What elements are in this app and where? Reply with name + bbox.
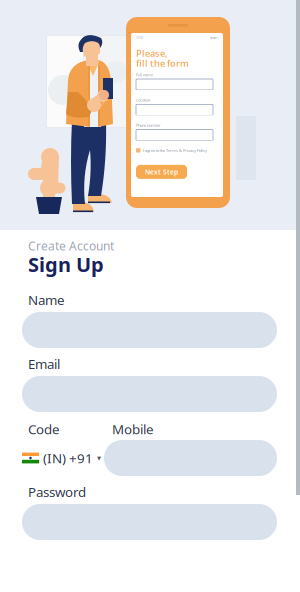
button[interactable]: (IN) +91 (22, 440, 104, 476)
staticText: Name (28, 291, 65, 309)
button[interactable] (22, 504, 277, 540)
staticText: 9:50 (136, 35, 143, 40)
staticText: fill the form (136, 57, 189, 69)
staticText: Please, (136, 47, 168, 59)
staticText: Email (28, 355, 60, 373)
staticText: (IN) +91 (43, 449, 93, 467)
staticText: Sign Up (28, 251, 104, 278)
staticText: Mobile (112, 420, 154, 438)
staticText: Next Step (145, 167, 178, 176)
button[interactable] (104, 440, 277, 476)
staticText: Create Account (28, 238, 114, 254)
staticText: Phone number (136, 123, 161, 128)
button[interactable] (22, 312, 277, 348)
staticText: I agree to the Terms & Privacy Policy (143, 148, 207, 153)
staticText: Full name (136, 72, 153, 77)
staticText: Location (136, 97, 150, 103)
button[interactable]: Next Step (136, 165, 187, 179)
staticText: ▾ (97, 453, 101, 463)
staticText: Password (28, 483, 86, 501)
button[interactable] (22, 376, 277, 412)
staticText: ▰▰▱ (210, 35, 219, 40)
staticText: Code (28, 420, 60, 438)
